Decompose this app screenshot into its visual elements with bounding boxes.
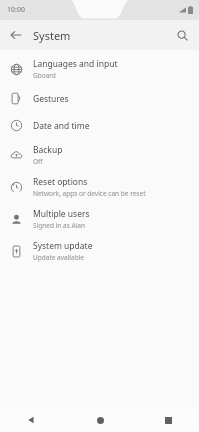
- button[interactable]: Search: [171, 24, 193, 46]
- button[interactable]: Gestures: [0, 85, 199, 112]
- staticText: Update available: [33, 253, 85, 262]
- button[interactable]: Languages and input: [0, 53, 199, 85]
- button[interactable]: Recent apps: [155, 408, 181, 432]
- staticText: Network, apps or device can be reset: [33, 189, 146, 198]
- button[interactable]: System update: [0, 235, 199, 267]
- button[interactable]: Back: [5, 24, 27, 46]
- button[interactable]: Reset options: [0, 171, 199, 203]
- button[interactable]: Home: [87, 408, 113, 432]
- staticText: Gboard: [33, 71, 56, 80]
- staticText: Gestures: [33, 93, 69, 105]
- staticText: Languages and input: [33, 58, 118, 70]
- staticText: Date and time: [33, 120, 90, 132]
- button[interactable]: Date and time: [0, 112, 199, 139]
- staticText: 10:00: [7, 5, 25, 15]
- staticText: Reset options: [33, 176, 88, 188]
- staticText: Signed in as Alan: [33, 221, 85, 230]
- staticText: Backup: [33, 144, 63, 156]
- staticText: Multiple users: [33, 208, 90, 220]
- staticText: Off: [33, 157, 43, 166]
- staticText: System update: [33, 240, 93, 252]
- staticText: System: [33, 28, 71, 43]
- button[interactable]: Multiple users: [0, 203, 199, 235]
- button[interactable]: Back: [18, 408, 44, 432]
- button[interactable]: Backup: [0, 139, 199, 171]
